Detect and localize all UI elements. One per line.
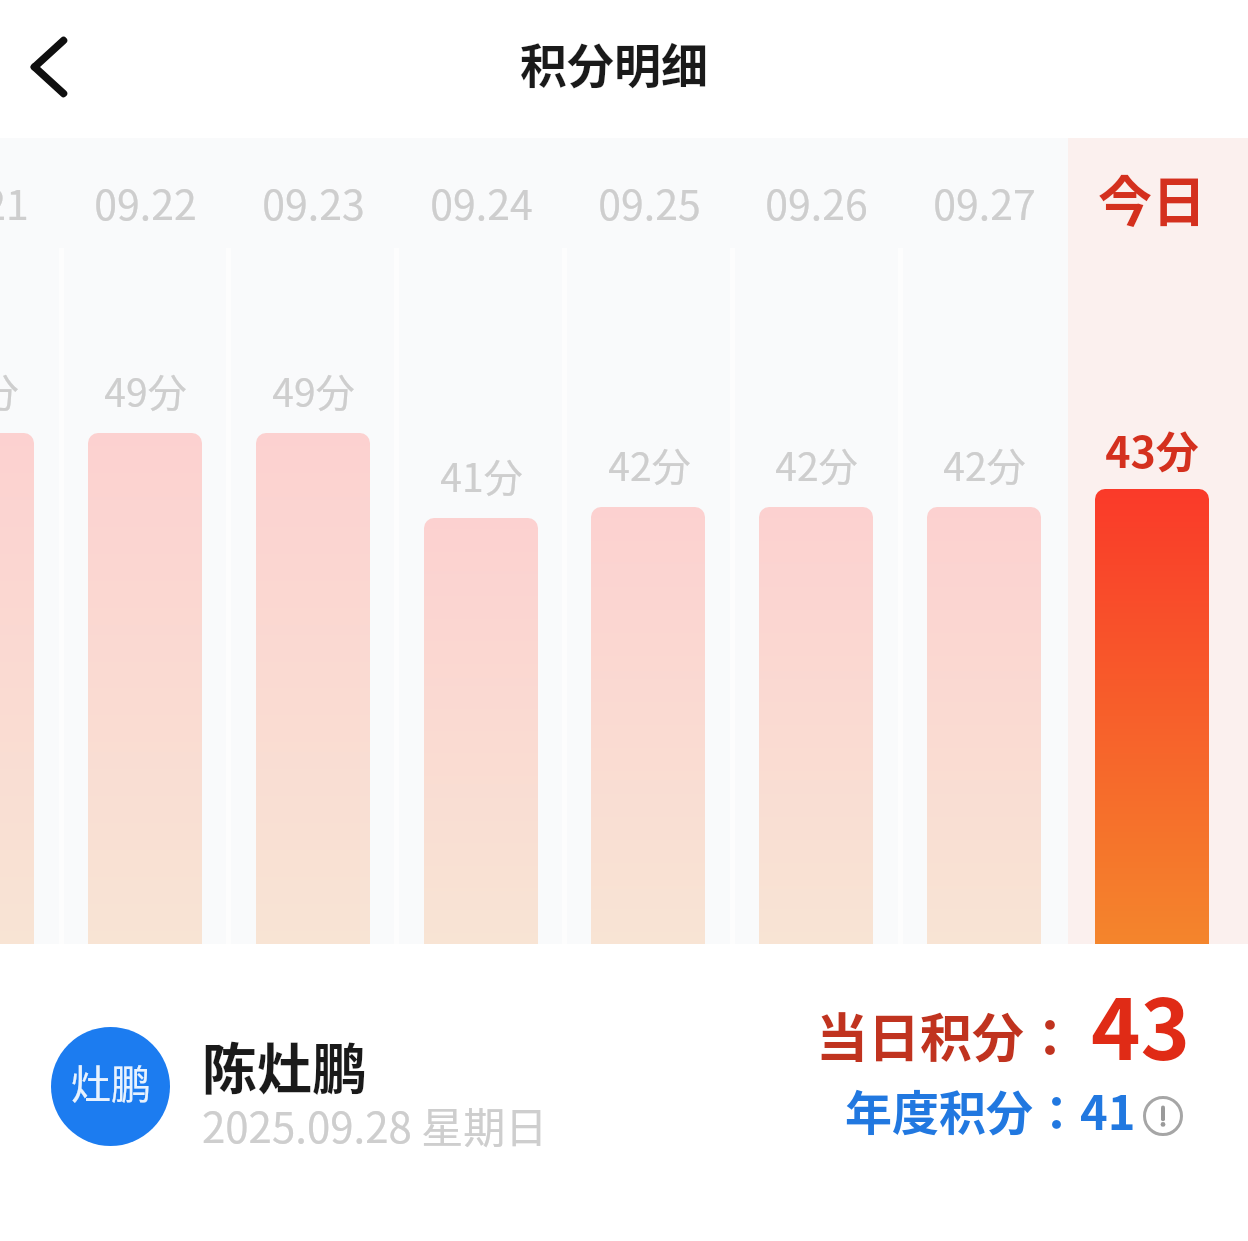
button[interactable] — [1068, 138, 1248, 944]
staticText: 09.26 — [765, 172, 868, 231]
staticText: 灶鹏 — [71, 1053, 151, 1111]
staticText: 49分 — [104, 362, 187, 418]
staticText: 今日 — [1098, 159, 1206, 237]
staticText: 积分明细 — [520, 28, 708, 96]
button[interactable]: Info — [1143, 1096, 1183, 1136]
staticText: 09.27 — [933, 172, 1036, 231]
staticText: 当日积分： — [816, 997, 1077, 1072]
staticText: 09.21 — [0, 172, 29, 231]
staticText: 09.23 — [262, 172, 365, 231]
staticText: 09.22 — [94, 172, 197, 231]
staticText: 42分 — [608, 436, 691, 492]
button[interactable]: Back — [7, 25, 91, 109]
staticText: 49分 — [272, 362, 355, 418]
staticText: 43分 — [1105, 418, 1199, 480]
staticText: 年度积分：41 — [845, 1075, 1136, 1143]
button[interactable]: 灶鹏 — [51, 1027, 170, 1146]
staticText: 09.25 — [598, 172, 701, 231]
staticText: 2025.09.28 星期日 — [202, 1094, 548, 1155]
staticText: 09.24 — [430, 172, 533, 231]
staticText: 41分 — [440, 447, 523, 503]
staticText: 43 — [1091, 963, 1191, 1085]
staticText: 陈灶鹏 — [202, 1025, 368, 1105]
staticText: 49分 — [0, 362, 19, 418]
staticText: 42分 — [943, 436, 1026, 492]
staticText: 42分 — [775, 436, 858, 492]
